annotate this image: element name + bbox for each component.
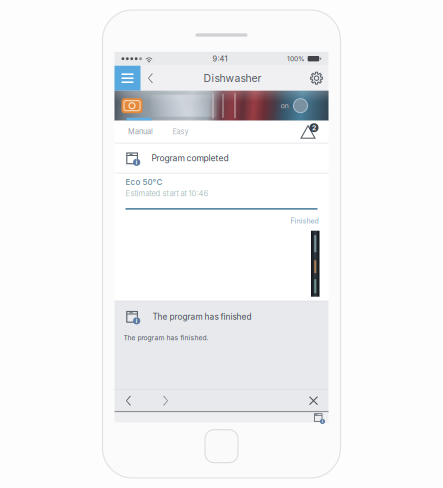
staticText: i — [136, 317, 138, 324]
staticText: on — [280, 101, 288, 110]
staticText: Easy — [172, 127, 188, 136]
button[interactable]: Menu — [114, 66, 140, 91]
button[interactable]: Appliance status — [313, 412, 323, 422]
button[interactable]: Easy — [167, 121, 193, 143]
button[interactable]: Settings — [304, 66, 328, 91]
button[interactable]: Close — [303, 390, 323, 412]
staticText: Dishwasher — [203, 72, 261, 84]
button[interactable]: Back — [140, 66, 160, 91]
staticText: 100% — [287, 55, 305, 63]
staticText: 2 — [312, 124, 316, 132]
staticText: i — [322, 419, 323, 424]
button[interactable]: Next — [153, 390, 177, 412]
staticText: The program has finished — [152, 312, 251, 322]
button[interactable]: Previous — [116, 390, 140, 412]
staticText: Manual — [128, 127, 153, 136]
staticText: 9:41 — [212, 54, 227, 63]
button[interactable]: Manual — [123, 121, 157, 143]
staticText: The program has finished. — [123, 334, 208, 342]
staticText: Eco 50°C — [125, 177, 162, 187]
staticText: Estimated start at 10:46 — [125, 189, 208, 198]
button[interactable]: 2 warnings — [297, 124, 318, 140]
staticText: Program completed — [151, 153, 228, 163]
staticText: i — [136, 159, 138, 166]
staticText: Finished — [290, 217, 318, 225]
